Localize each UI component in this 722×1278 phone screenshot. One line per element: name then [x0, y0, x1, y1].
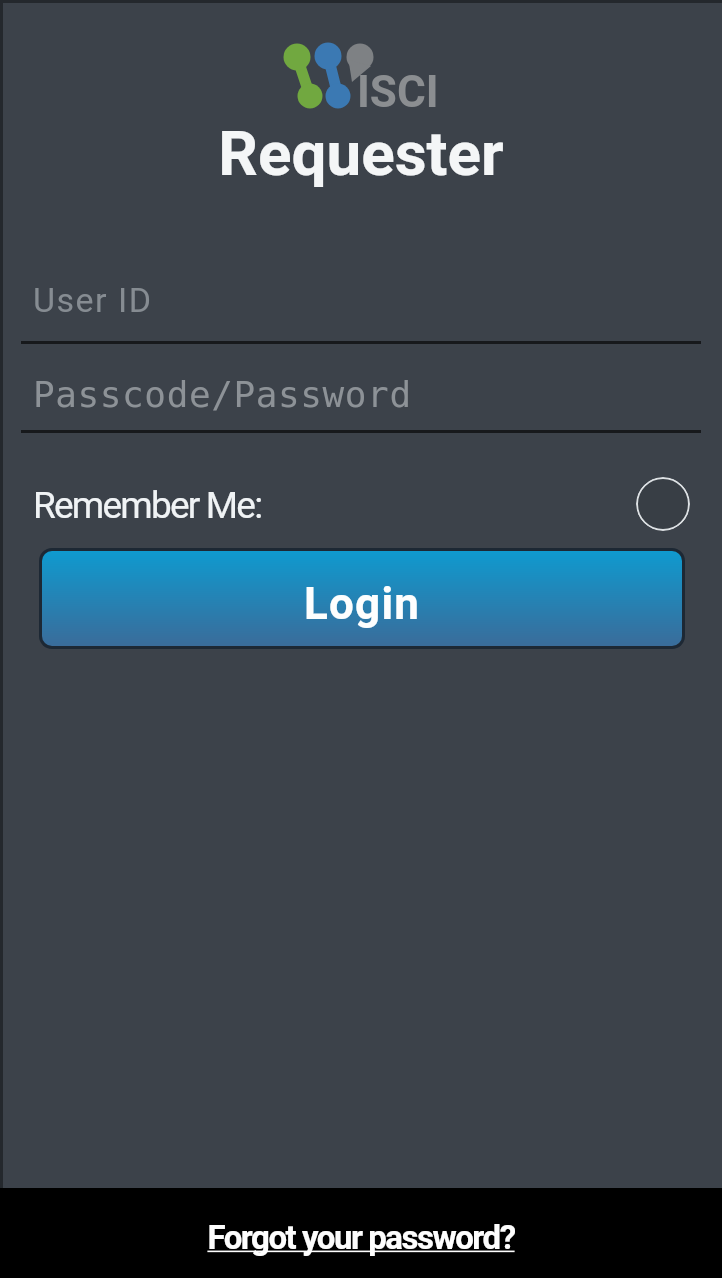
staticText: Remember Me:	[33, 484, 262, 527]
staticText: ISCI	[357, 66, 439, 118]
staticText: User ID	[33, 280, 153, 320]
staticText: Passcode/Password	[33, 374, 412, 416]
staticText: Requester	[0, 117, 722, 190]
staticText: Forgot your password?	[0, 1218, 722, 1257]
staticText: Login	[304, 578, 421, 630]
